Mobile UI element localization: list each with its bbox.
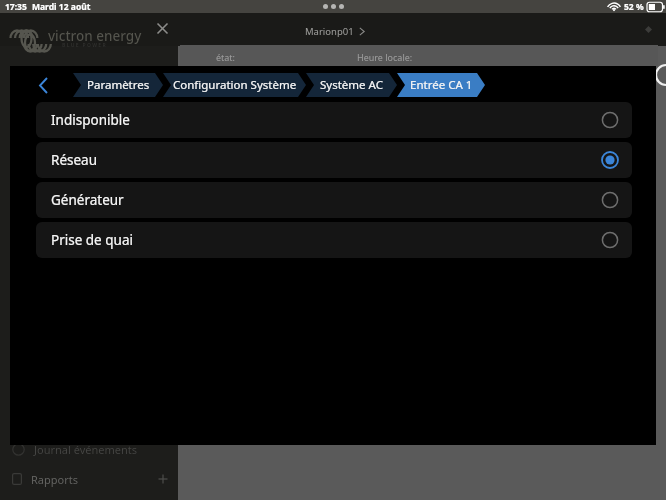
staticText: Journal événements	[34, 442, 137, 457]
staticText: Indisponible	[51, 111, 130, 129]
button[interactable]: Indisponible	[36, 102, 632, 138]
staticText: B L U E P O W E R	[62, 42, 106, 49]
staticText: Configuration Système	[173, 77, 297, 93]
button[interactable]: Marionp01	[305, 24, 365, 38]
button[interactable]: Entrée CA 1	[397, 73, 485, 97]
button[interactable]: Rapports	[12, 468, 176, 490]
staticText: victron energy	[48, 27, 142, 45]
staticText: Mardi 12 août	[32, 1, 91, 13]
button[interactable]: Journal événements	[12, 438, 176, 460]
staticText: 17:35	[5, 1, 27, 13]
staticText: Heure locale:	[357, 51, 413, 63]
button[interactable]: Prise de quai	[36, 222, 632, 258]
staticText: Rapports	[31, 472, 78, 487]
staticText: Paramètres	[87, 77, 150, 93]
button[interactable]: Configuration Système	[163, 73, 306, 97]
button[interactable]: Système AC	[306, 73, 397, 97]
button[interactable]: Paramètres	[73, 73, 163, 97]
staticText: Réseau	[51, 151, 98, 169]
button[interactable]: Refresh	[652, 64, 666, 86]
button[interactable]: Back	[31, 73, 55, 97]
button[interactable]: Status	[644, 25, 653, 34]
staticText: 52 %	[624, 1, 644, 13]
staticText: Système AC	[320, 77, 383, 93]
staticText: Marionp01	[305, 25, 354, 38]
button[interactable]: Générateur	[36, 182, 632, 218]
staticText: Générateur	[51, 191, 124, 209]
staticText: Entrée CA 1	[410, 77, 473, 93]
staticText: état:	[216, 51, 236, 63]
button[interactable]: Réseau	[36, 142, 632, 178]
button[interactable]: Close	[157, 23, 168, 34]
staticText: Prise de quai	[51, 231, 133, 249]
